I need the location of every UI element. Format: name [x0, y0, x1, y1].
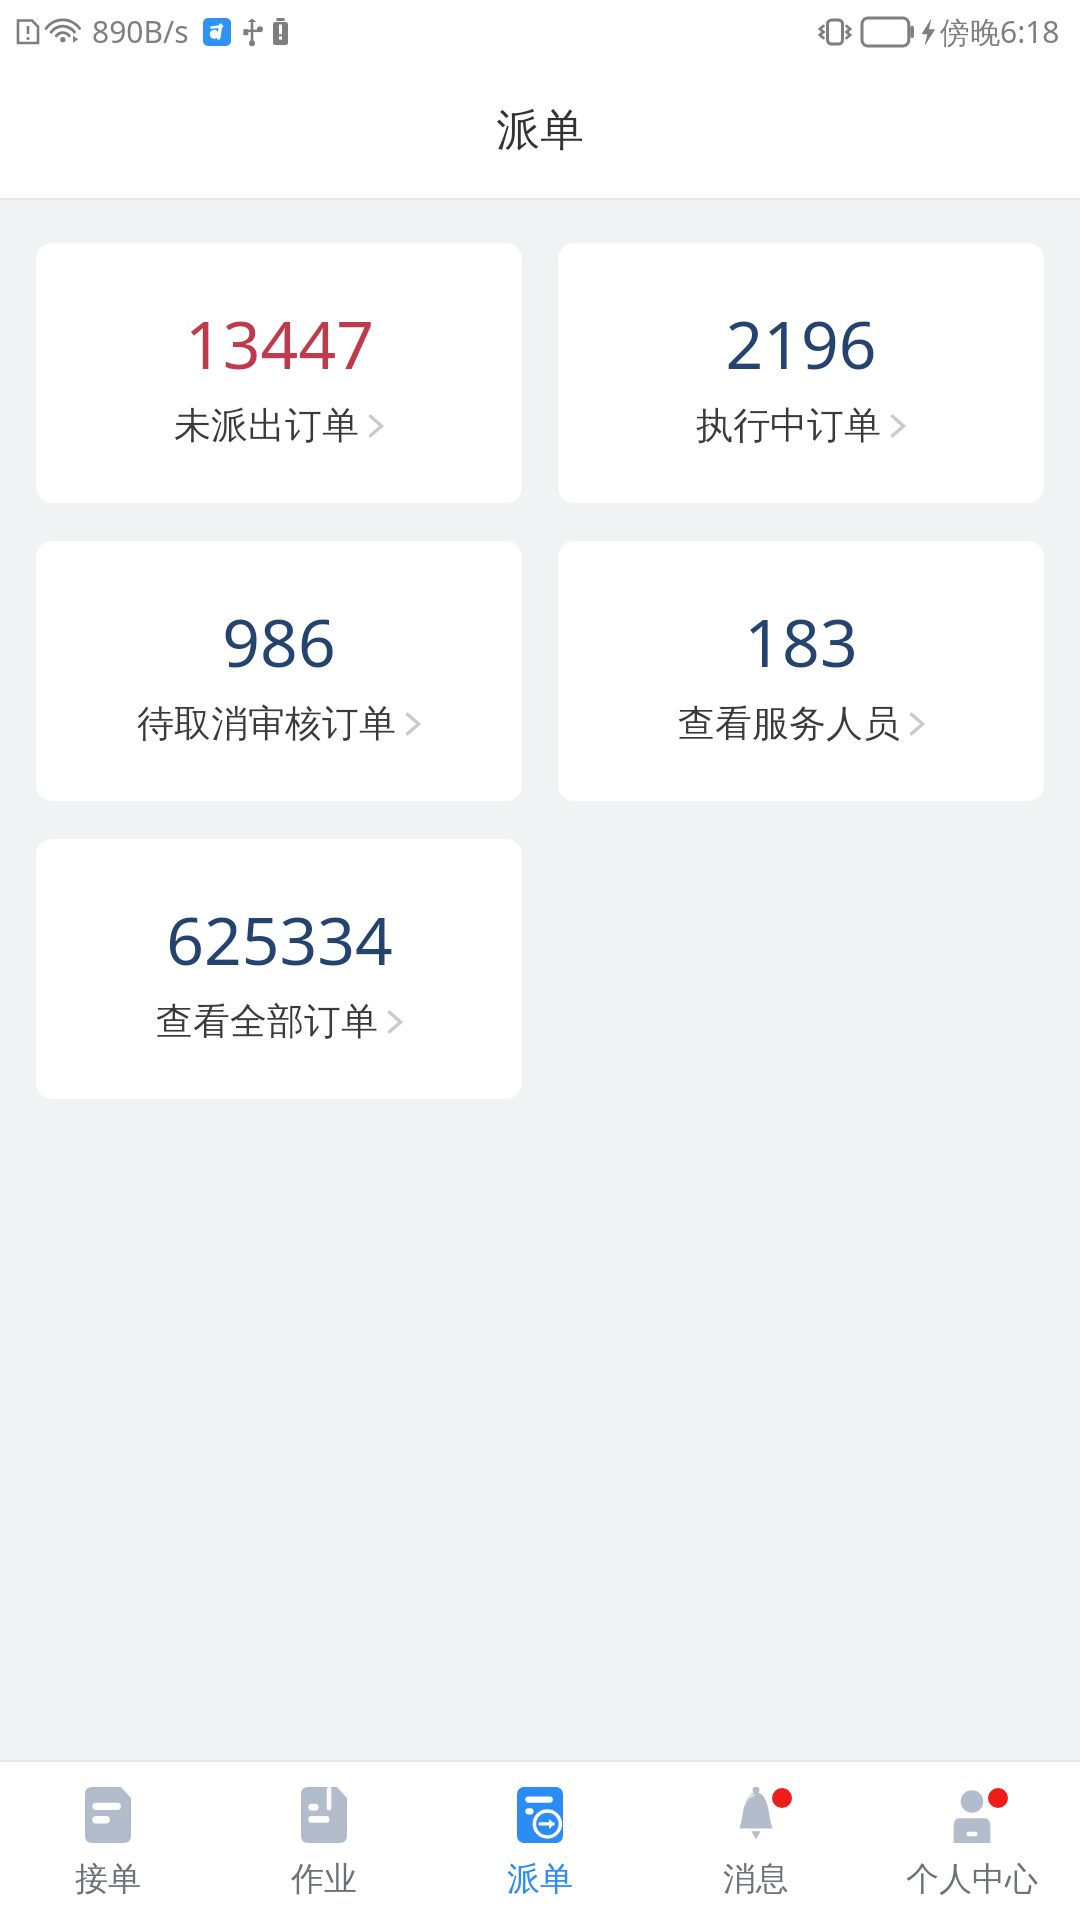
staticText: 2196 — [725, 298, 877, 388]
button[interactable]: 183 — [558, 541, 1044, 801]
staticText: 查看服务人员 — [678, 700, 900, 747]
staticText: 13447 — [185, 298, 374, 388]
button[interactable]: 13447 — [36, 243, 522, 503]
button[interactable]: 派单 — [432, 1762, 648, 1920]
button[interactable]: 作业 — [216, 1762, 432, 1920]
staticText: 派单 — [496, 103, 584, 158]
staticText: 派单 — [507, 1858, 573, 1900]
staticText: 890B/s — [92, 11, 189, 52]
staticText: 183 — [744, 596, 858, 686]
staticText: 待取消审核订单 — [137, 700, 396, 747]
button[interactable]: 625334 — [36, 839, 522, 1099]
staticText: 傍晚6:18 — [940, 11, 1060, 52]
staticText: 未派出订单 — [174, 402, 359, 449]
button[interactable]: 986 — [36, 541, 522, 801]
staticText: 接单 — [75, 1858, 141, 1900]
button[interactable]: 2196 — [558, 243, 1044, 503]
staticText: 消息 — [723, 1858, 789, 1900]
button[interactable]: 消息 — [648, 1762, 864, 1920]
staticText: 执行中订单 — [696, 402, 881, 449]
button[interactable]: 个人中心 — [864, 1762, 1080, 1920]
staticText: 作业 — [291, 1858, 357, 1900]
staticText: 625334 — [166, 894, 393, 984]
staticText: 个人中心 — [906, 1858, 1038, 1900]
button[interactable]: 接单 — [0, 1762, 216, 1920]
staticText: 查看全部订单 — [156, 998, 378, 1045]
staticText: 986 — [222, 596, 336, 686]
